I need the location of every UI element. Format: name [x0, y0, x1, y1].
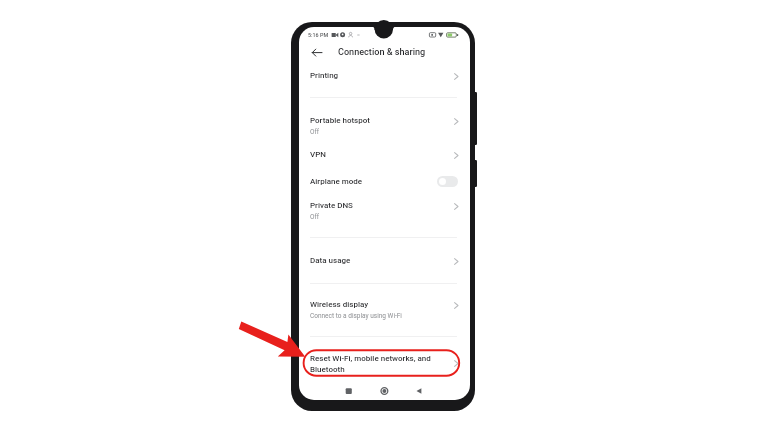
button[interactable]: Back	[305, 42, 325, 62]
button[interactable]: VPN	[299, 142, 470, 168]
staticText: VPN	[310, 150, 326, 159]
button[interactable]: Back	[412, 385, 425, 398]
button[interactable]: Portable hotspot	[299, 108, 470, 142]
button[interactable]: Home	[378, 384, 391, 397]
button[interactable]: Private DNS	[299, 193, 470, 227]
button[interactable]: Recent apps	[342, 385, 355, 398]
staticText: 5:16 PM	[308, 32, 329, 38]
staticText: Private DNS	[310, 201, 353, 210]
staticText: Wireless display	[310, 300, 369, 309]
button[interactable]: Wireless display	[299, 292, 470, 326]
button[interactable]: Data usage	[299, 248, 470, 274]
staticText: Off	[310, 128, 319, 136]
staticText: Data usage	[310, 256, 351, 265]
button[interactable]: Printing	[299, 63, 470, 89]
staticText: Printing	[310, 71, 339, 80]
staticText: Airplane mode	[310, 177, 363, 186]
staticText: Off	[310, 213, 319, 221]
button[interactable]: Airplane mode	[299, 169, 470, 195]
button[interactable]: Airplane mode toggle	[437, 176, 458, 187]
button[interactable]: Reset Wi-Fi, mobile networks, and Blueto…	[299, 349, 470, 377]
staticText: Reset Wi-Fi, mobile networks, and Blueto…	[310, 354, 431, 374]
staticText: Connection & sharing	[338, 47, 426, 58]
staticText: Portable hotspot	[310, 116, 370, 125]
staticText: Connect to a display using Wi-Fi	[310, 312, 402, 320]
